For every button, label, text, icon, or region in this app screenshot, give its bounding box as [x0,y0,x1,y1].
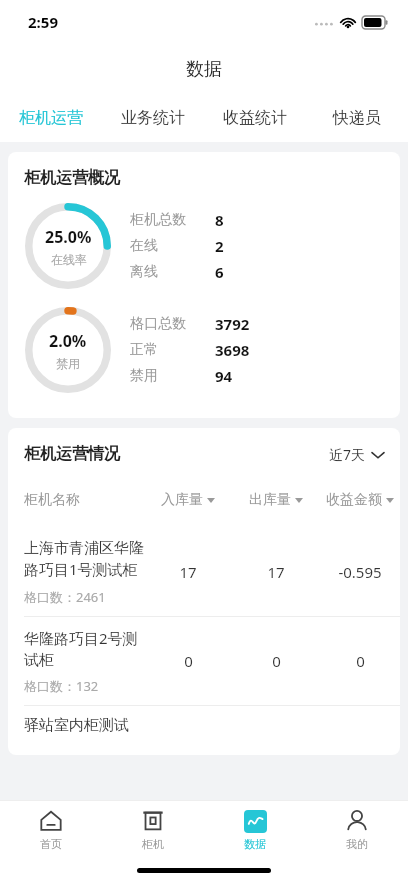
staticText: 格口数：2461 [24,588,106,606]
staticText: 数据 [244,837,266,851]
staticText: 17 [267,562,285,582]
staticText: 快递员 [333,108,381,128]
button[interactable]: 柜机运营 [0,94,102,142]
staticText: 格口数：132 [24,677,99,695]
button[interactable]: 我的 [306,801,408,857]
button[interactable]: 出库量 [232,491,320,509]
button[interactable]: 收益统计 [204,94,306,142]
staticText: 2:59 [28,12,58,32]
staticText: 0 [356,651,365,671]
staticText: 0 [184,651,193,671]
button[interactable]: 入库量 [144,491,232,509]
staticText: 柜机 [142,837,164,851]
staticText: 柜机运营情况 [24,444,120,464]
staticText: 收益金额 [326,491,382,509]
staticText: 柜机运营概况 [24,168,120,188]
staticText: 入库量 [161,491,203,509]
staticText: 禁用 [130,367,215,385]
staticText: -0.595 [338,562,382,582]
staticText: 数据 [186,58,222,81]
staticText: 在线 [130,237,215,255]
staticText: 上海市青浦区华隆 路巧目1号测试柜 [24,539,144,580]
staticText: 0 [272,651,281,671]
button[interactable]: 华隆路巧目2号测 试柜 [8,617,400,705]
staticText: 6 [215,262,224,282]
staticText: 94 [215,366,233,386]
staticText: 离线 [130,263,215,281]
button[interactable]: 近7天 [329,445,384,464]
button[interactable]: 快递员 [306,94,408,142]
staticText: 驿站室内柜测试 [24,716,129,735]
staticText: 格口总数 [130,315,215,333]
staticText: 华隆路巧目2号测 试柜 [24,628,138,669]
staticText: 禁用 [56,356,80,371]
staticText: 近7天 [329,445,366,464]
staticText: 17 [179,562,197,582]
staticText: 在线率 [51,252,87,267]
staticText: 柜机总数 [130,211,215,229]
staticText: 3792 [215,314,250,334]
staticText: 柜机名称 [24,491,144,509]
staticText: 出库量 [249,491,291,509]
button[interactable]: 上海市青浦区华隆 路巧目1号测试柜 [8,528,400,616]
staticText: 2 [215,236,224,256]
button[interactable]: 柜机 [102,801,204,857]
button[interactable]: 收益金额 [320,491,400,509]
staticText: 3698 [215,340,250,360]
button[interactable]: 数据 [204,801,306,857]
staticText: 25.0% [45,226,92,248]
staticText: 正常 [130,341,215,359]
staticText: 2.0% [49,330,87,352]
staticText: 柜机运营 [19,108,83,128]
staticText: 首页 [40,837,62,851]
button[interactable]: 业务统计 [102,94,204,142]
button[interactable]: 首页 [0,801,102,857]
staticText: 收益统计 [223,108,287,128]
staticText: 8 [215,210,224,230]
staticText: 我的 [346,837,368,851]
staticText: 业务统计 [121,108,185,128]
